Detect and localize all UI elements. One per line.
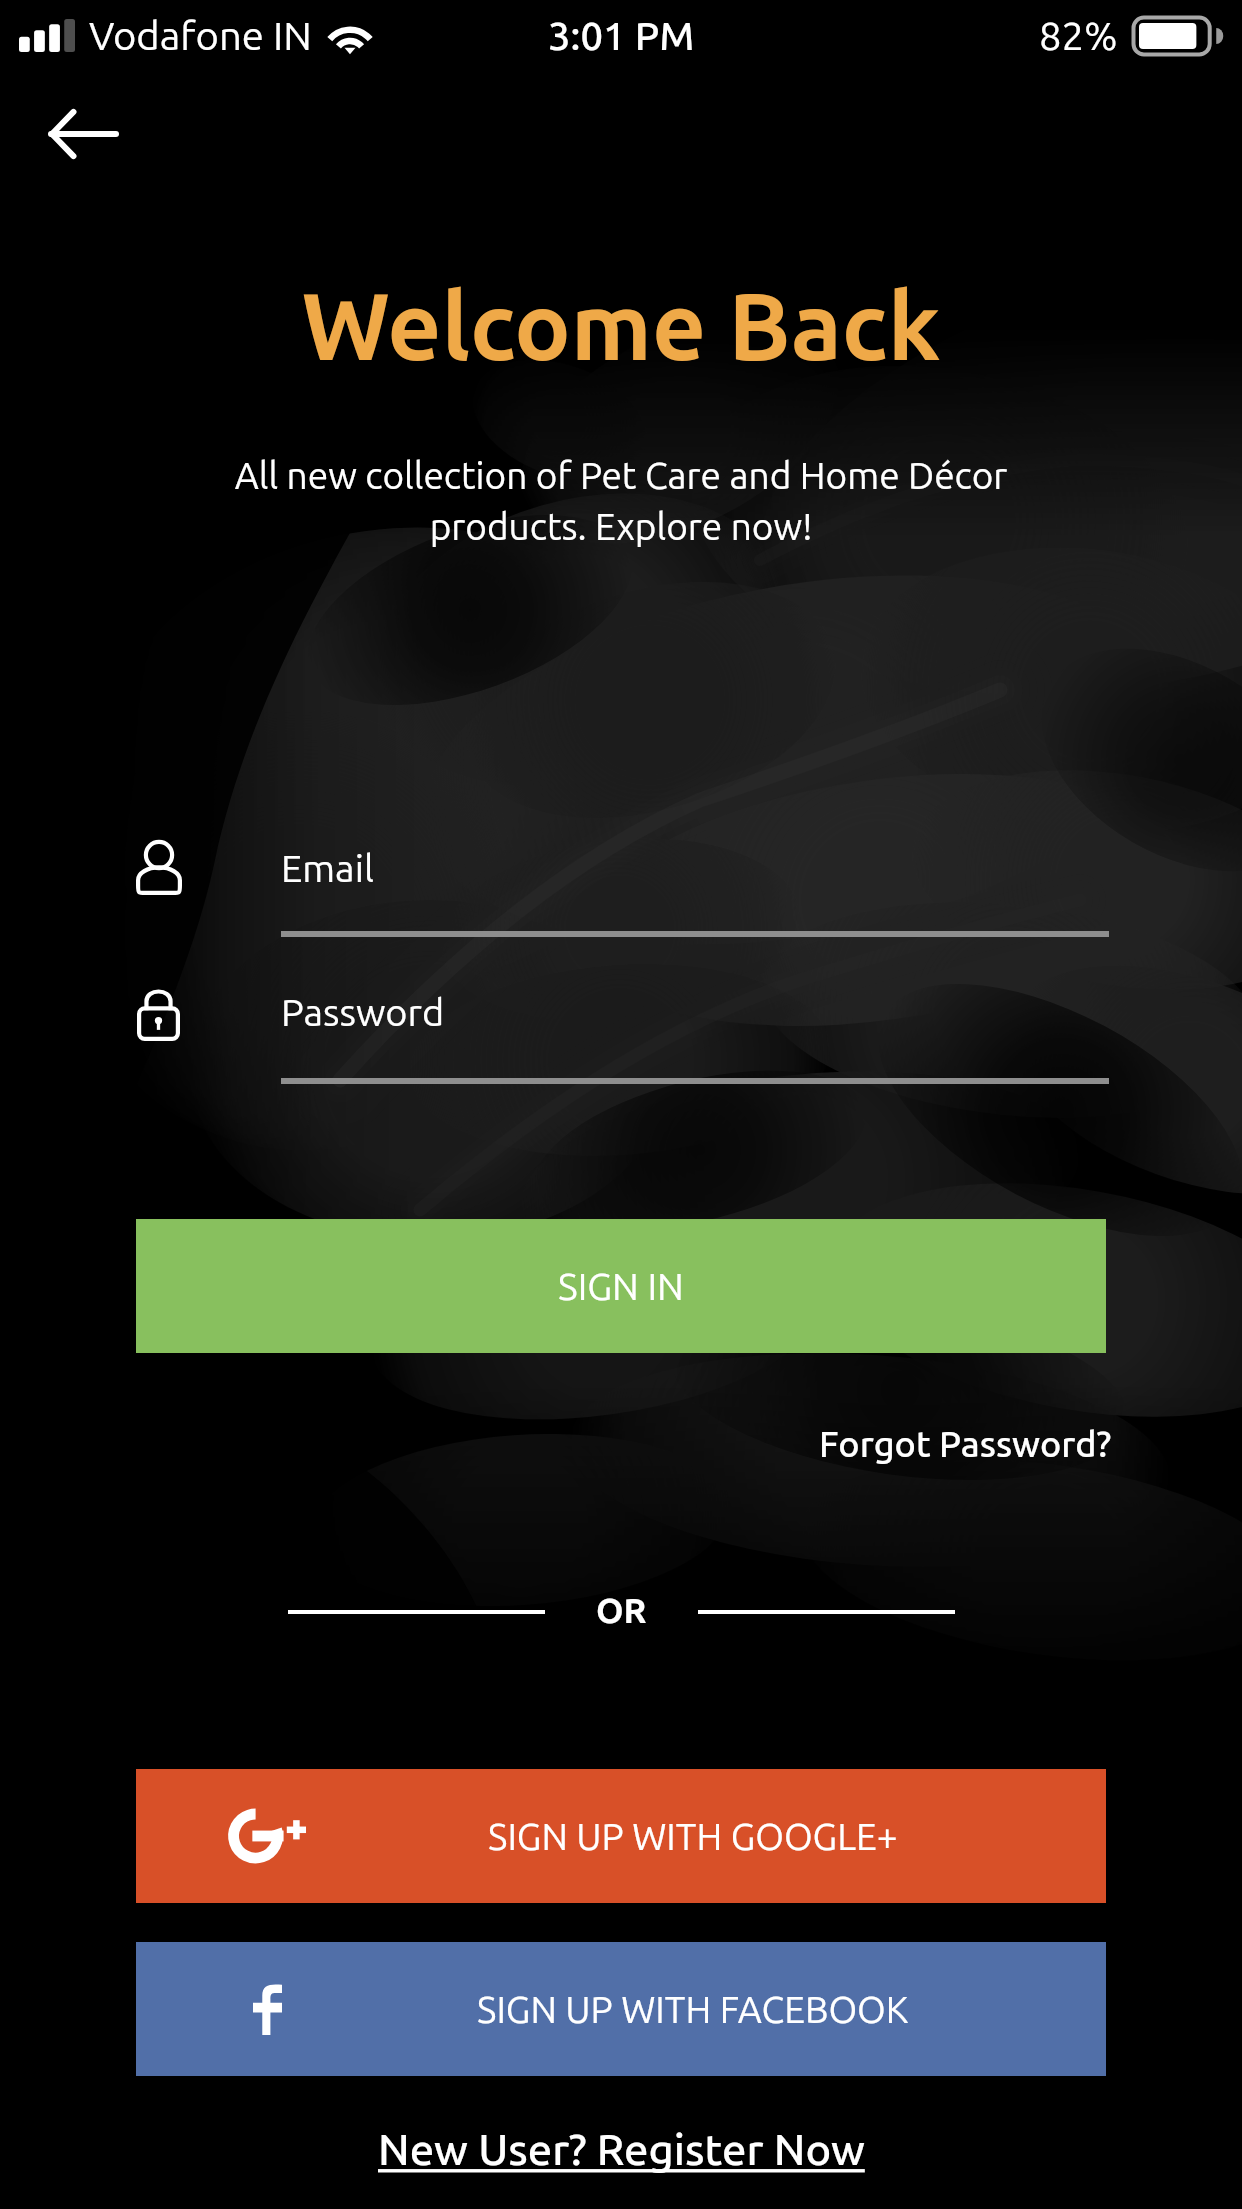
- button[interactable]: SIGN UP WITH FACEBOOK: [136, 1942, 1106, 2076]
- staticText: SIGN UP WITH GOOGLE+: [488, 1816, 898, 1857]
- button[interactable]: Back: [30, 88, 136, 180]
- button[interactable]: SIGN UP WITH GOOGLE+: [136, 1769, 1106, 1903]
- staticText: 3:01 PM: [548, 13, 695, 58]
- staticText: Forgot Password?: [819, 1423, 1112, 1463]
- staticText: 82%: [1039, 13, 1118, 58]
- staticText: SIGN IN: [558, 1265, 684, 1307]
- staticText: Vodafone IN: [89, 13, 312, 58]
- staticText: Welcome Back: [0, 272, 1242, 377]
- staticText: All new collection of Pet Care and Home …: [0, 455, 1242, 547]
- button[interactable]: SIGN IN: [136, 1219, 1106, 1353]
- staticText: SIGN UP WITH FACEBOOK: [477, 1989, 909, 2030]
- staticText: Password: [281, 991, 445, 1034]
- staticText: New User? Register Now: [378, 2124, 865, 2173]
- staticText: Email: [281, 847, 374, 890]
- button[interactable]: Forgot Password?: [819, 1408, 1112, 1478]
- staticText: OR: [596, 1590, 647, 1629]
- button[interactable]: New User? Register Now: [0, 2124, 1242, 2204]
